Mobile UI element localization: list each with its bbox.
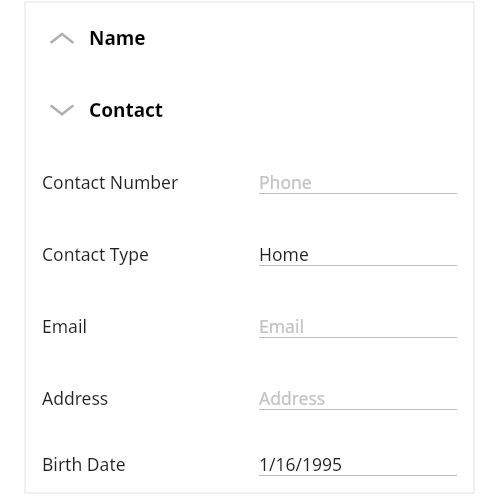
staticText: Contact <box>89 97 164 123</box>
button[interactable]: Contact Type <box>25 218 474 290</box>
other: Collapse Name <box>50 31 74 45</box>
button[interactable]: Expand Contact <box>25 74 474 146</box>
other: Expand Contact <box>50 103 74 117</box>
staticText: Address <box>259 386 326 410</box>
button[interactable]: Address <box>25 362 474 434</box>
staticText: Email <box>42 314 87 338</box>
button[interactable]: Collapse Name <box>25 2 474 74</box>
staticText: Phone <box>259 170 312 194</box>
staticText: Address <box>42 386 109 410</box>
staticText: Birth Date <box>42 452 126 476</box>
button[interactable]: Contact Number <box>25 146 474 218</box>
staticText: Email <box>259 314 304 338</box>
button[interactable]: Email <box>25 290 474 362</box>
staticText: 1/16/1995 <box>259 452 343 476</box>
staticText: Home <box>259 242 309 266</box>
staticText: Name <box>89 25 146 51</box>
staticText: Contact Number <box>42 170 179 194</box>
staticText: Contact Type <box>42 242 149 266</box>
button[interactable]: Birth Date <box>25 434 474 493</box>
